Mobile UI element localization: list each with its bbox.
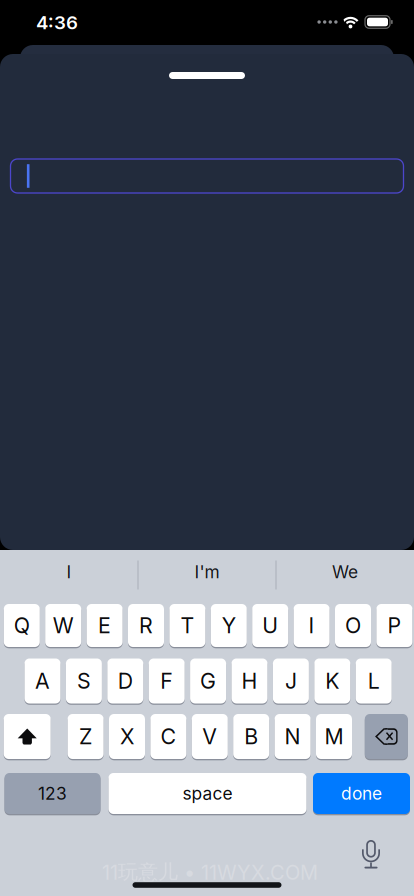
staticText: M	[324, 724, 343, 749]
staticText: 4:36	[36, 11, 78, 34]
button[interactable]: K	[314, 658, 350, 704]
staticText: U	[262, 613, 278, 638]
staticText: I	[66, 561, 71, 582]
button[interactable]: M	[316, 713, 352, 760]
button[interactable]: D	[107, 658, 143, 704]
staticText: L	[368, 668, 380, 694]
button[interactable]: Delete	[365, 713, 408, 760]
button[interactable]: P	[376, 603, 412, 648]
staticText: S	[77, 668, 91, 694]
button[interactable]: S	[66, 658, 102, 704]
staticText: K	[325, 668, 339, 694]
button[interactable]: I	[0, 550, 138, 594]
button[interactable]: R	[128, 603, 164, 648]
staticText: space	[182, 783, 232, 804]
button[interactable]: B	[233, 713, 269, 760]
button[interactable]: A	[24, 658, 60, 704]
button[interactable]: Shift	[4, 713, 51, 760]
staticText: R	[139, 613, 153, 638]
staticText: H	[241, 668, 257, 694]
staticText: W	[53, 613, 74, 638]
staticText: done	[341, 783, 382, 804]
button[interactable]: U	[252, 603, 288, 648]
staticText: C	[160, 724, 176, 749]
staticText: O	[345, 613, 361, 638]
staticText: I	[309, 613, 315, 638]
button[interactable]: 123	[4, 772, 100, 815]
button[interactable]: X	[109, 713, 145, 760]
staticText: Z	[79, 724, 92, 749]
button[interactable]: Text field	[10, 159, 403, 193]
button[interactable]: I'm	[138, 550, 276, 594]
button[interactable]: C	[150, 713, 186, 760]
button[interactable]: Y	[211, 603, 247, 648]
staticText: Q	[14, 613, 30, 638]
button[interactable]: G	[190, 658, 226, 704]
staticText: G	[200, 668, 216, 694]
button[interactable]: F	[149, 658, 185, 704]
staticText: 123	[38, 783, 67, 804]
button[interactable]: done	[313, 772, 410, 815]
button[interactable]: O	[335, 603, 371, 648]
staticText: B	[244, 724, 258, 749]
button[interactable]: We	[276, 550, 414, 594]
staticText: E	[98, 613, 111, 638]
staticText: A	[35, 668, 50, 694]
button[interactable]: E	[87, 603, 123, 648]
staticText: I'm	[194, 561, 219, 582]
button[interactable]: L	[356, 658, 392, 704]
button[interactable]: W	[45, 603, 81, 648]
button[interactable]: Q	[4, 603, 40, 648]
staticText: P	[387, 613, 401, 638]
staticText: D	[118, 668, 133, 694]
button[interactable]: Dictate	[360, 839, 382, 869]
button[interactable]: H	[231, 658, 267, 704]
staticText: V	[202, 724, 217, 749]
button[interactable]: space	[108, 772, 306, 815]
staticText: Y	[222, 613, 236, 638]
staticText: We	[332, 561, 358, 582]
button[interactable]: V	[192, 713, 228, 760]
staticText: F	[160, 668, 173, 694]
staticText: X	[120, 724, 134, 749]
staticText: J	[285, 668, 297, 694]
button[interactable]: J	[273, 658, 309, 704]
staticText: N	[285, 724, 301, 749]
button[interactable]: T	[169, 603, 205, 648]
staticText: 11玩意儿 • 11WYX.COM	[102, 859, 318, 885]
staticText: T	[180, 613, 194, 638]
button[interactable]: N	[275, 713, 311, 760]
button[interactable]: Z	[68, 713, 104, 760]
button[interactable]: I	[294, 603, 330, 648]
